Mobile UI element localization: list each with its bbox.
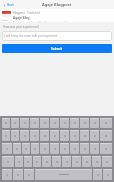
button[interactable]: Key: [13, 169, 23, 180]
staticText: How was your experience?: [3, 25, 39, 29]
button[interactable]: Key: [70, 118, 79, 128]
button[interactable]: Key: [2, 118, 10, 128]
button[interactable]: Key: [80, 130, 89, 141]
button[interactable]: Key: [42, 156, 51, 167]
button[interactable]: Key: [40, 143, 49, 154]
button[interactable]: Key: [2, 130, 10, 141]
button[interactable]: Key: [62, 156, 71, 167]
button[interactable]: Key: [40, 130, 49, 141]
button[interactable]: Key: [31, 143, 39, 154]
button[interactable]: Key: [80, 118, 89, 128]
button[interactable]: Key: [70, 143, 79, 154]
button[interactable]: Key: [20, 118, 29, 128]
staticText: Agaje Blog: [13, 16, 30, 20]
button[interactable]: Key: [30, 118, 39, 128]
button[interactable]: Key: [24, 156, 32, 167]
button[interactable]: Submit: [2, 44, 112, 53]
button[interactable]: Key: [52, 156, 61, 167]
button[interactable]: Key: [2, 156, 14, 167]
button[interactable]: Key: [11, 118, 19, 128]
button[interactable]: Key: [20, 130, 29, 141]
button[interactable]: Key: [40, 118, 49, 128]
button[interactable]: Key: [2, 169, 12, 180]
button[interactable]: I will bring the team talk you respected…: [2, 31, 112, 41]
button[interactable]: Key: [50, 118, 59, 128]
button[interactable]: Key: [35, 169, 92, 180]
button[interactable]: Back: [2, 2, 16, 8]
button[interactable]: Key: [22, 143, 30, 154]
button[interactable]: Key: [60, 143, 69, 154]
button[interactable]: Key: [13, 143, 21, 154]
button[interactable]: Key: [80, 143, 89, 154]
button[interactable]: Key: [100, 143, 112, 154]
button[interactable]: Key: [50, 143, 59, 154]
button[interactable]: Key: [100, 118, 112, 128]
button[interactable]: Key: [103, 169, 112, 180]
staticText: Back: [7, 3, 15, 7]
button[interactable]: Key: [82, 156, 91, 167]
button[interactable]: Key: [15, 156, 23, 167]
button[interactable]: Key: [60, 130, 69, 141]
button[interactable]: Key: [11, 130, 19, 141]
button[interactable]: Key: [50, 130, 59, 141]
button[interactable]: Key: [24, 169, 34, 180]
staticText: more: [2, 18, 8, 21]
button[interactable]: Key: [33, 156, 41, 167]
button[interactable]: Key: [30, 130, 39, 141]
staticText: Blogpost: [13, 11, 25, 15]
button[interactable]: Key: [70, 130, 79, 141]
staticText: Agaje Blogpost: [42, 2, 72, 7]
staticText: Published: [27, 11, 40, 15]
button[interactable]: Key: [60, 118, 69, 128]
staticText: Submit: [51, 47, 63, 51]
button[interactable]: Key: [92, 156, 101, 167]
button[interactable]: Key: [72, 156, 81, 167]
button[interactable]: Key: [90, 130, 99, 141]
button[interactable]: Key: [93, 169, 102, 180]
button[interactable]: Key: [90, 118, 99, 128]
staticText: A short description of the blogpost cont…: [13, 21, 72, 22]
button[interactable]: Key: [100, 130, 112, 141]
button[interactable]: Blogpost: [0, 9, 114, 22]
button[interactable]: Key: [90, 143, 99, 154]
button[interactable]: Key: [102, 156, 112, 167]
button[interactable]: Key: [2, 143, 12, 154]
staticText: I will bring the team talk you respected…: [4, 34, 58, 38]
